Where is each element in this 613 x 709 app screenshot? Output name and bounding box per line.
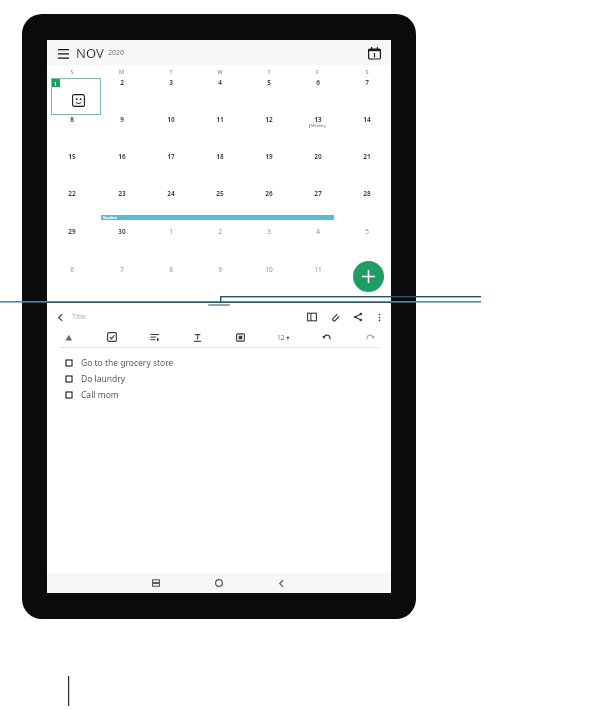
button[interactable]: 23: [97, 188, 146, 226]
button[interactable]: 1: [47, 77, 97, 114]
button[interactable]: 12: [244, 114, 293, 151]
staticText: 6: [316, 78, 320, 87]
button[interactable]: 6: [293, 77, 342, 114]
staticText: 6: [70, 265, 74, 274]
button[interactable]: 10: [244, 264, 293, 302]
button[interactable]: 11: [195, 114, 244, 151]
staticText: 7: [365, 78, 369, 87]
button[interactable]: Open navigation menu: [55, 45, 71, 61]
button[interactable]: 2: [97, 77, 146, 114]
button[interactable]: 7: [97, 264, 146, 302]
staticText: 19: [265, 152, 273, 161]
staticText: 8: [169, 265, 173, 274]
staticText: Go to the grocery store: [81, 357, 174, 369]
staticText: S: [70, 68, 74, 75]
button[interactable]: Checklist: [90, 327, 133, 347]
staticText: 5: [267, 78, 271, 87]
staticText: 5: [365, 227, 369, 236]
staticText: 26: [265, 189, 273, 198]
button[interactable]: 13: [293, 114, 342, 151]
staticText: 13: [314, 115, 322, 124]
button[interactable]: Attach: [328, 310, 342, 324]
button[interactable]: Back: [250, 573, 313, 593]
button[interactable]: 1: [146, 226, 195, 264]
button[interactable]: Redo: [348, 327, 391, 347]
button[interactable]: 4: [195, 77, 244, 114]
staticText: 3: [267, 227, 271, 236]
button[interactable]: 28: [342, 188, 391, 226]
button[interactable]: Call mom: [47, 387, 391, 403]
button[interactable]: 6: [47, 264, 97, 302]
staticText: 23: [118, 189, 126, 198]
staticText: F: [316, 68, 319, 75]
button[interactable]: 20: [293, 151, 342, 188]
staticText: S: [365, 68, 369, 75]
button[interactable]: 8: [146, 264, 195, 302]
button[interactable]: 30: [97, 226, 146, 264]
button[interactable]: 21: [342, 151, 391, 188]
staticText: 25: [216, 189, 224, 198]
button[interactable]: List: [133, 327, 176, 347]
staticText: Meeting: [311, 123, 326, 128]
button[interactable]: 22: [47, 188, 97, 226]
button[interactable]: 11: [293, 264, 342, 302]
staticText: 2: [120, 78, 124, 87]
button[interactable]: 5: [342, 226, 391, 264]
staticText: 12 ▾: [277, 333, 290, 342]
button[interactable]: Text format: [176, 327, 219, 347]
button[interactable]: Go to the grocery store: [47, 355, 391, 371]
staticText: Do laundry: [81, 373, 126, 385]
staticText: 1: [169, 227, 173, 236]
button[interactable]: Vacation: [101, 215, 334, 220]
button[interactable]: Pen: [47, 327, 90, 347]
button[interactable]: Insert: [219, 327, 262, 347]
button[interactable]: 10: [146, 114, 195, 151]
button[interactable]: Home: [187, 573, 250, 593]
button[interactable]: 25: [195, 188, 244, 226]
button[interactable]: 27: [293, 188, 342, 226]
button[interactable]: More options: [373, 311, 385, 323]
button[interactable]: 5: [244, 77, 293, 114]
staticText: 3: [169, 78, 173, 87]
button[interactable]: Undo: [305, 327, 348, 347]
button[interactable]: 24: [146, 188, 195, 226]
button[interactable]: 12: [342, 264, 391, 302]
button[interactable]: Recent apps: [124, 573, 187, 593]
button[interactable]: 17: [146, 151, 195, 188]
staticText: 10: [167, 115, 175, 124]
button[interactable]: 18: [195, 151, 244, 188]
button[interactable]: 7: [342, 77, 391, 114]
staticText: 22: [68, 189, 76, 198]
staticText: 20: [314, 152, 322, 161]
button[interactable]: Go to today: [365, 44, 383, 62]
staticText: 27: [314, 189, 322, 198]
button[interactable]: View mode: [305, 310, 319, 324]
button[interactable]: 8: [47, 114, 97, 151]
staticText: 4: [316, 227, 320, 236]
button[interactable]: 14: [342, 114, 391, 151]
staticText: 12: [363, 265, 371, 274]
staticText: 8: [70, 115, 74, 124]
button[interactable]: 3: [244, 226, 293, 264]
button[interactable]: 2: [195, 226, 244, 264]
staticText: M: [119, 68, 124, 75]
button[interactable]: 19: [244, 151, 293, 188]
staticText: 14: [363, 115, 371, 124]
button[interactable]: 3: [146, 77, 195, 114]
button[interactable]: 9: [97, 114, 146, 151]
button[interactable]: Back: [53, 310, 67, 324]
button[interactable]: 4: [293, 226, 342, 264]
button[interactable]: 9: [195, 264, 244, 302]
staticText: Vacation: [103, 215, 118, 220]
button[interactable]: 16: [97, 151, 146, 188]
button[interactable]: 26: [244, 188, 293, 226]
staticText: Title: [72, 312, 86, 322]
staticText: 21: [363, 152, 371, 161]
staticText: 2020: [108, 48, 125, 58]
button[interactable]: Share: [351, 310, 365, 324]
button[interactable]: Font size: [262, 327, 305, 347]
button[interactable]: Do laundry: [47, 371, 391, 387]
button[interactable]: 15: [47, 151, 97, 188]
button[interactable]: Create event: [353, 261, 384, 292]
button[interactable]: 29: [47, 226, 97, 264]
